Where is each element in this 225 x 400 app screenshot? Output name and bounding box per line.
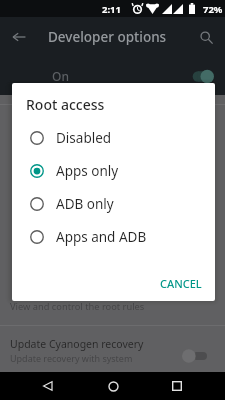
- staticText: Apps only: [56, 162, 119, 180]
- button[interactable]: Home: [96, 372, 130, 400]
- staticText: 72%: [203, 3, 223, 16]
- button[interactable]: Disabled: [12, 121, 215, 154]
- button[interactable]: Apps only: [12, 154, 215, 187]
- button[interactable]: Search: [192, 23, 220, 51]
- staticText: View and control the root rules: [10, 300, 145, 313]
- staticText: 2:11: [102, 3, 121, 16]
- button[interactable]: ADB only: [12, 187, 215, 220]
- button[interactable]: On: [0, 57, 225, 95]
- staticText: Disabled: [56, 129, 112, 147]
- staticText: Update recovery with system: [10, 352, 133, 364]
- staticText: On: [52, 68, 69, 84]
- button[interactable]: Back: [31, 372, 65, 400]
- staticText: Root access: [26, 95, 105, 114]
- button[interactable]: CANCEL: [153, 271, 209, 296]
- button[interactable]: Apps and ADB: [12, 220, 215, 253]
- button[interactable]: Update Cyanogen recovery: [0, 326, 225, 373]
- staticText: CANCEL: [160, 276, 202, 291]
- staticText: Update Cyanogen recovery: [10, 337, 144, 351]
- button[interactable]: Back: [5, 23, 33, 51]
- staticText: ADB only: [56, 195, 114, 213]
- button[interactable]: Recents: [160, 372, 194, 400]
- staticText: Developer options: [48, 28, 167, 46]
- staticText: Apps and ADB: [56, 228, 147, 246]
